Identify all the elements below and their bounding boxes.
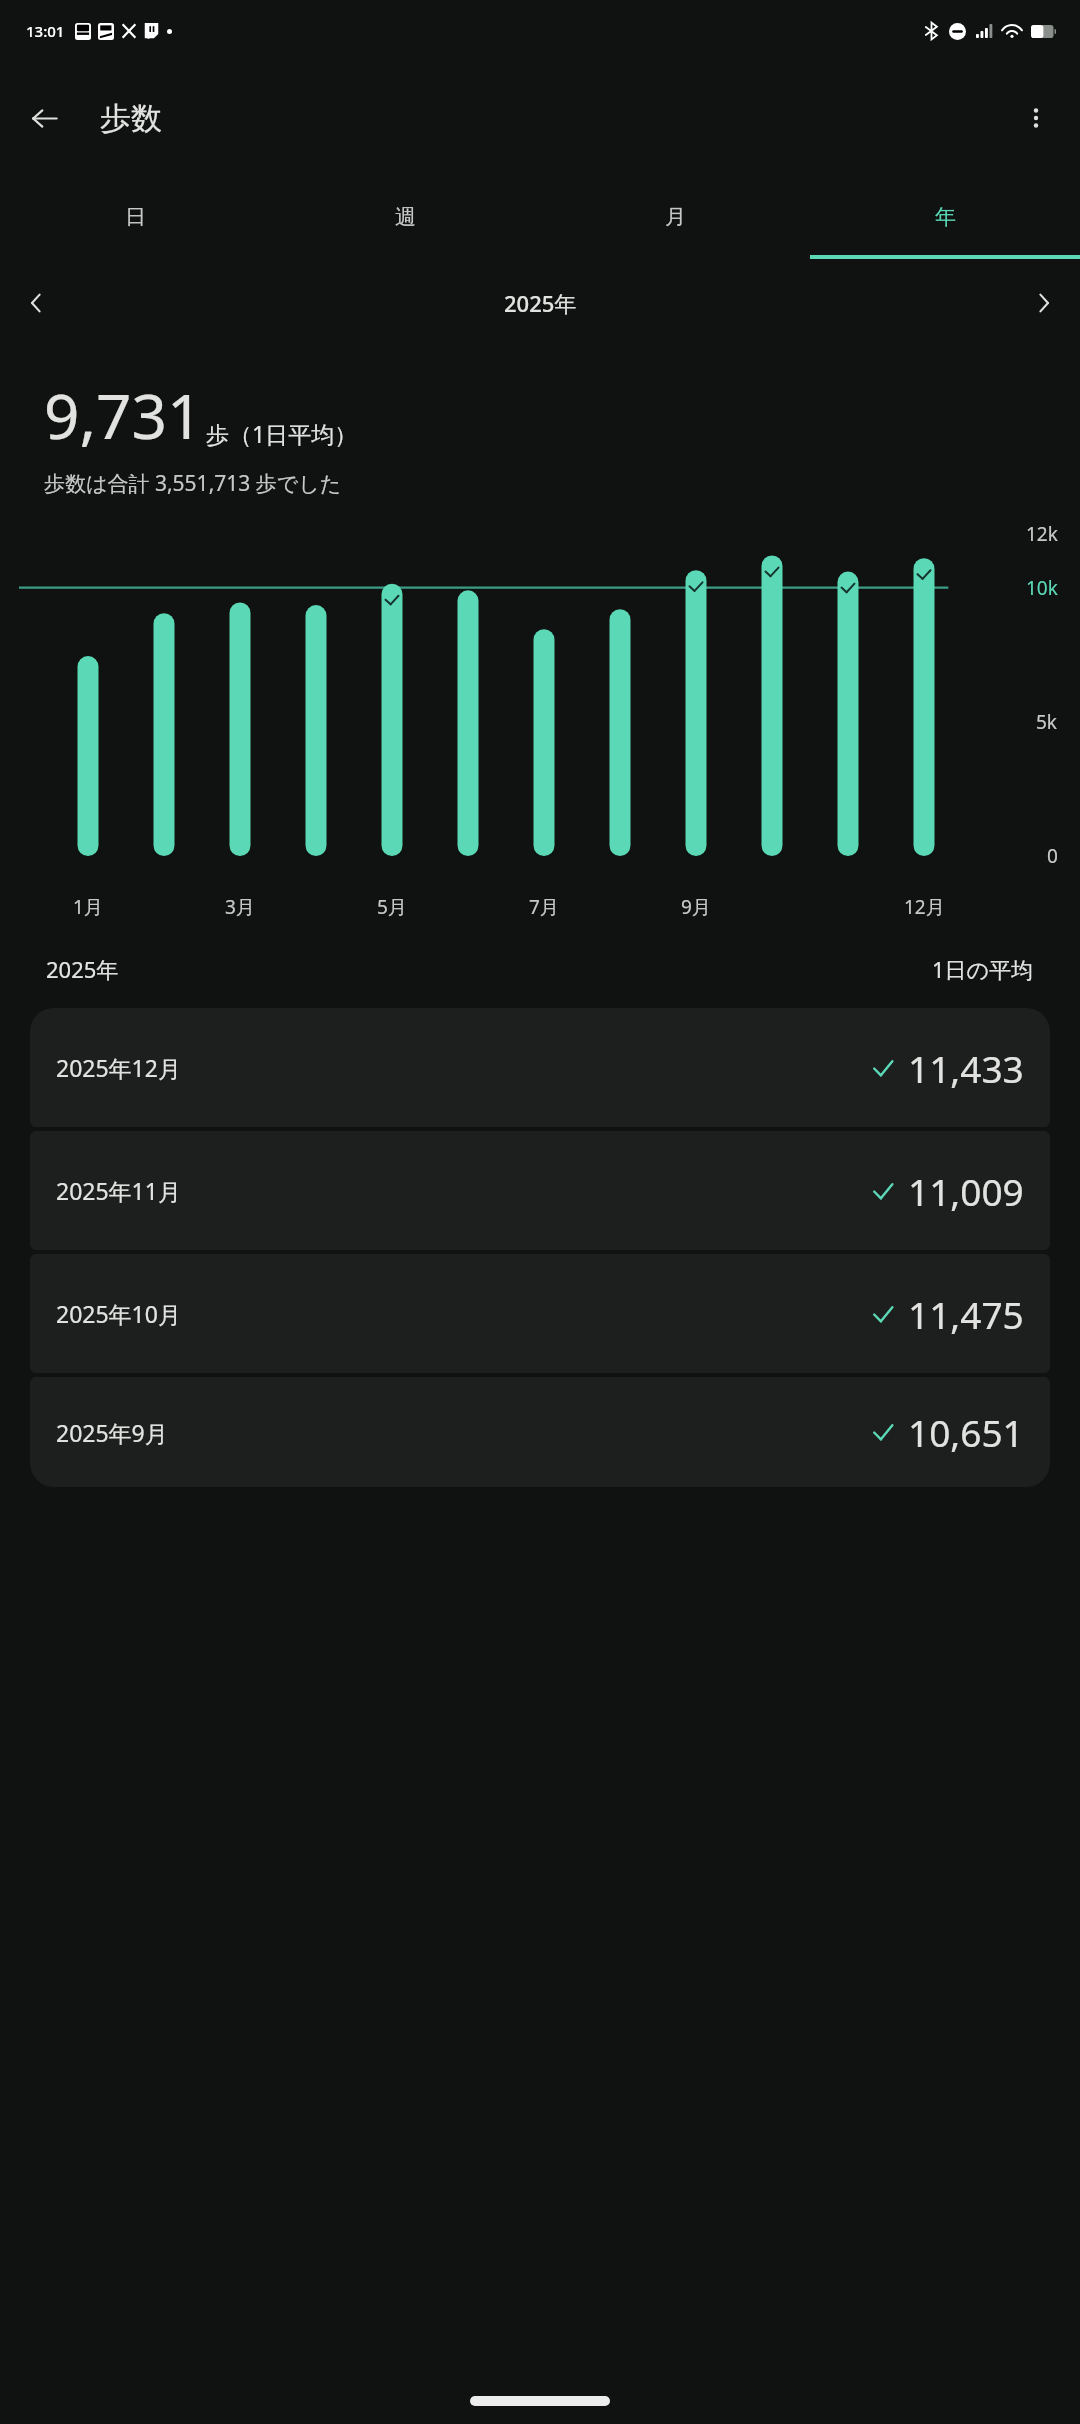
button[interactable]: More options xyxy=(1004,86,1068,150)
staticText: 5k xyxy=(1036,709,1058,735)
staticText: 2025年12月 xyxy=(56,1052,181,1083)
staticText: 11,433 xyxy=(908,1043,1024,1093)
staticText: 2025年 xyxy=(504,288,577,318)
staticText: 9,731 xyxy=(44,373,203,457)
staticText: 1月 xyxy=(73,894,103,920)
staticText: 3月 xyxy=(225,894,255,920)
staticText: 2025年9月 xyxy=(56,1417,168,1448)
button[interactable]: Next year xyxy=(1016,275,1072,331)
staticText: 2025年11月 xyxy=(56,1175,181,1206)
button[interactable]: Back xyxy=(12,86,76,150)
staticText: 1日の平均 xyxy=(932,954,1034,984)
button[interactable]: 週 xyxy=(270,174,540,259)
staticText: 月 xyxy=(665,204,686,230)
button[interactable]: 2025年10月 xyxy=(30,1254,1050,1373)
staticText: 歩数は合計 3,551,713 歩でした xyxy=(44,469,342,498)
staticText: 12月 xyxy=(904,894,945,920)
button[interactable]: 日 xyxy=(0,174,270,259)
button[interactable]: 2025年11月 xyxy=(30,1131,1050,1250)
staticText: 12k xyxy=(1026,521,1058,547)
staticText: 5月 xyxy=(377,894,407,920)
button[interactable]: 2025年12月 xyxy=(30,1008,1050,1127)
staticText: 日 xyxy=(125,204,146,230)
staticText: 2025年 xyxy=(46,954,119,984)
staticText: 2025年10月 xyxy=(56,1298,181,1329)
staticText: 歩（1日平均） xyxy=(206,418,358,449)
button[interactable]: 年 xyxy=(810,174,1080,259)
button[interactable]: 月 xyxy=(540,174,810,259)
staticText: 歩数 xyxy=(100,99,162,138)
staticText: 10,651 xyxy=(908,1407,1024,1457)
staticText: 9月 xyxy=(681,894,711,920)
button[interactable]: 2025年9月 xyxy=(30,1377,1050,1487)
staticText: 週 xyxy=(395,204,416,230)
staticText: 7月 xyxy=(529,894,559,920)
button[interactable]: Previous year xyxy=(8,275,64,331)
staticText: 11,009 xyxy=(908,1166,1024,1216)
staticText: 13:01 xyxy=(26,21,65,41)
staticText: 0 xyxy=(1047,843,1058,869)
staticText: 年 xyxy=(935,204,956,230)
staticText: 11,475 xyxy=(908,1289,1024,1339)
staticText: 10k xyxy=(1026,575,1058,601)
